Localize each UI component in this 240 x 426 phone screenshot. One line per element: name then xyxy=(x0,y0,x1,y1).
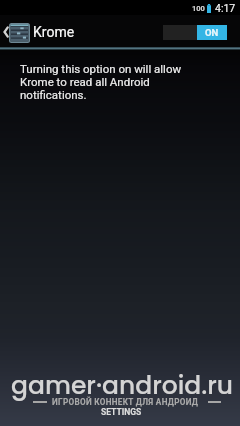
button[interactable]: ON xyxy=(163,25,227,40)
staticText: 4:17 xyxy=(215,2,236,14)
button[interactable]: Navigate up xyxy=(0,21,75,41)
staticText: Krome xyxy=(33,24,75,40)
staticText: Turning this option on will allow Krome … xyxy=(20,62,198,101)
staticText: ON xyxy=(205,27,219,38)
staticText: SETTINGS xyxy=(101,407,142,417)
staticText: ИГРОВОЙ КОННЕКТ ДЛЯ АНДРОИД xyxy=(52,397,199,407)
other: Navigate up xyxy=(0,25,9,39)
staticText: 100 xyxy=(192,4,205,13)
staticText: gamer·android.ru xyxy=(11,368,234,403)
